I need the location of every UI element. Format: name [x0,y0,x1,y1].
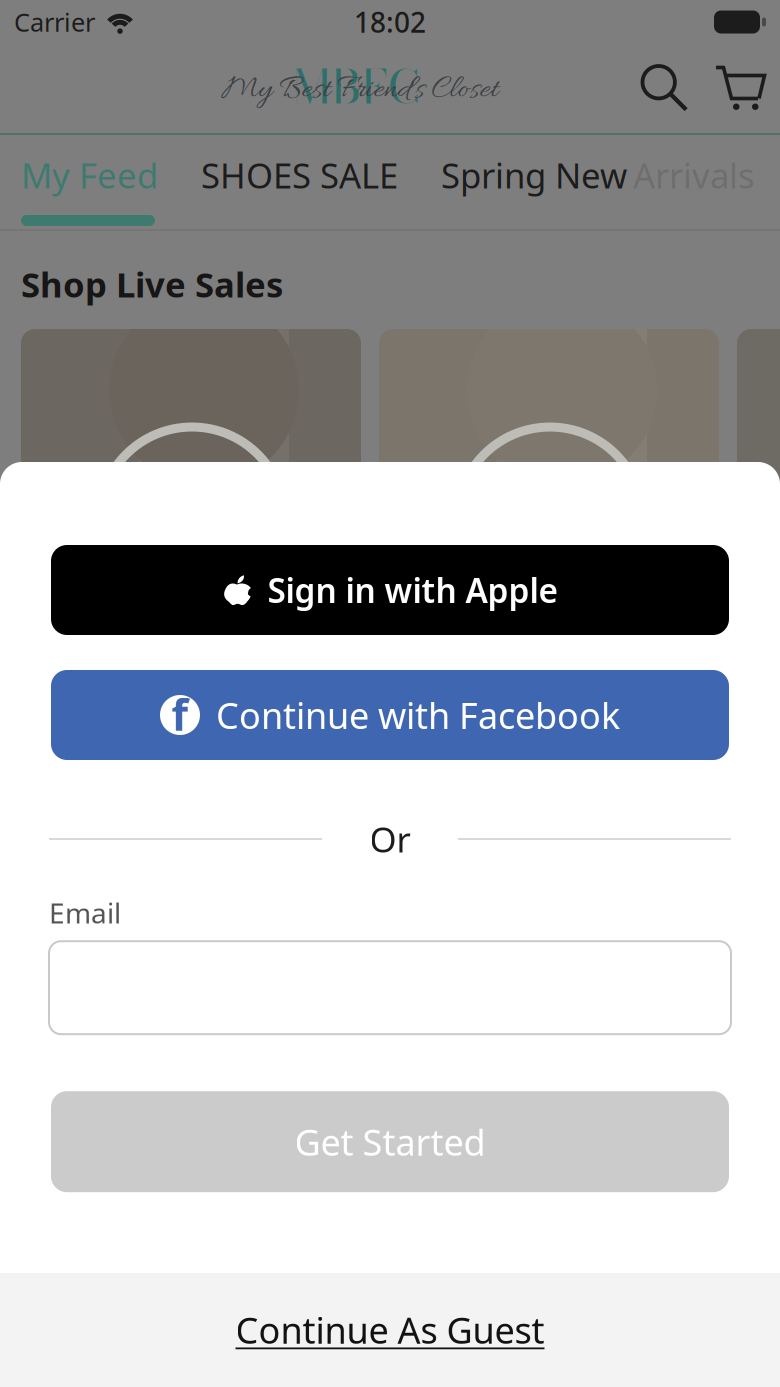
button[interactable]: Get Started [51,1091,729,1192]
staticText: Get Started [294,1118,485,1166]
staticText: 18:02 [354,3,426,41]
staticText: Shop Live Sales [21,261,283,307]
button[interactable]: Live sale [737,329,780,579]
staticText: Email [49,894,121,931]
button[interactable]: Live sale [21,329,361,579]
staticText: SHOES SALE [201,152,398,198]
button[interactable]: Continue As Guest [0,1273,780,1387]
staticText: Sign in with Apple [267,568,558,612]
staticText: Continue As Guest [235,1306,544,1354]
staticText: MBFC [292,51,420,122]
staticText: My Best Friend's Closet [221,70,498,111]
staticText: Or [369,816,410,862]
staticText: Arrivals [633,152,755,198]
button[interactable]: SHOES SALE [201,135,399,215]
staticText: Continue with Facebook [216,691,620,739]
staticText: Spring New [441,152,627,198]
button[interactable]: Search [640,57,690,119]
button[interactable]: Live sale [379,329,719,579]
button[interactable]: My Feed [21,135,158,215]
button[interactable]: Sign in with Apple [51,545,729,635]
button[interactable]: Spring New [441,135,763,215]
staticText: My Feed [21,152,158,198]
button[interactable]: Cart [714,57,766,119]
staticText: Carrier [14,5,95,39]
button[interactable]: f [51,670,729,760]
staticText: f [171,686,188,743]
